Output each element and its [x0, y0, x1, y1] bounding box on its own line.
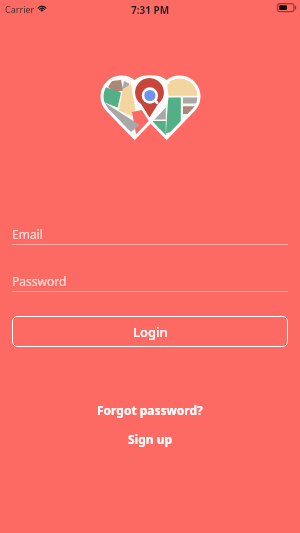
staticText: 7:31 PM — [131, 3, 170, 17]
button[interactable]: Sign up — [128, 431, 173, 447]
staticText: Carrier — [5, 3, 35, 15]
button[interactable]: Forgot password? — [97, 402, 203, 418]
button[interactable]: Login — [12, 316, 288, 347]
staticText: Password — [12, 273, 67, 289]
staticText: Login — [133, 323, 168, 341]
staticText: Email — [12, 226, 43, 242]
